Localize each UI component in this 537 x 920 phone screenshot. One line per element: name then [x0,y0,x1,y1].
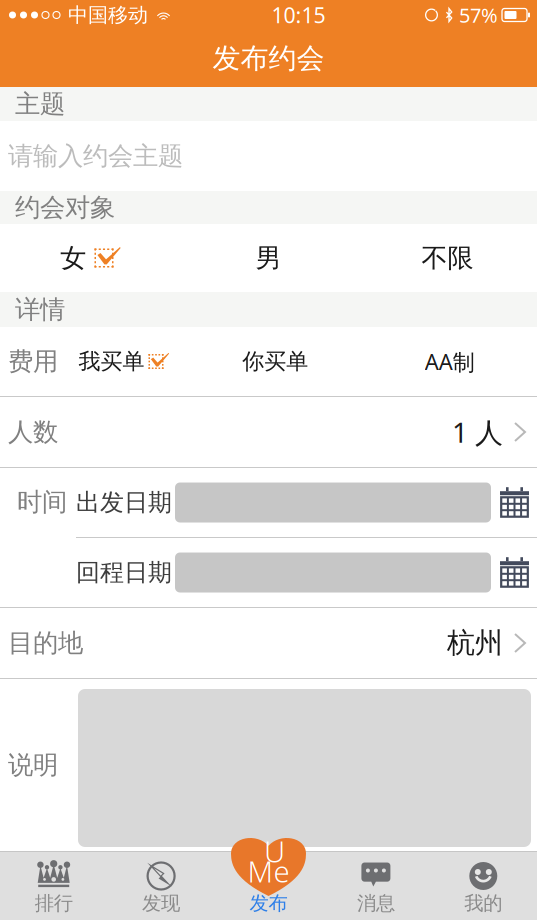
staticText: 主题 [15,88,65,120]
button[interactable]: 男 [179,224,358,292]
staticText: 消息 [357,891,395,915]
staticText: 发现 [142,891,180,915]
staticText: 杭州 [447,625,503,661]
button[interactable]: 发现 [107,851,215,920]
staticText: 发布约会 [212,41,324,76]
staticText: 发布 [249,891,287,915]
button[interactable]: 女 [0,224,179,292]
staticText: 详情 [15,293,65,325]
button[interactable]: AA制 [362,327,537,396]
staticText: 我的 [464,891,502,915]
staticText: 约会对象 [15,191,115,223]
button[interactable]: 我买单 [58,327,188,396]
button[interactable]: 我的 [430,851,537,920]
staticText: 回程日期 [76,557,172,588]
staticText: 排行 [35,891,73,915]
staticText: 说明 [8,749,58,781]
button[interactable]: 发布 [215,851,322,920]
button[interactable]: 目的地 [0,608,537,678]
button[interactable]: 你买单 [188,327,362,396]
staticText: 10:15 [271,0,325,30]
staticText: 目的地 [8,627,83,659]
staticText: U [264,831,285,871]
staticText: 中国移动 [68,2,148,28]
staticText: Me [247,851,289,891]
staticText: 女 [60,242,86,274]
button[interactable]: 不限 [358,224,537,292]
staticText: 我买单 [78,348,144,375]
staticText: 1 人 [452,413,503,451]
staticText: 你买单 [242,348,308,375]
staticText: 人数 [8,416,58,448]
staticText: 时间 [17,486,67,518]
staticText: 费用 [8,345,58,377]
staticText: 男 [255,242,281,274]
button[interactable]: 发布 [231,834,306,896]
staticText: 出发日期 [76,487,172,518]
staticText: 不限 [421,242,473,274]
button[interactable]: 消息 [322,851,430,920]
staticText: 57% [459,1,498,29]
button[interactable]: 排行 [0,851,107,920]
staticText: 请输入约会主题 [8,140,183,172]
button[interactable]: 人数 [0,397,537,467]
staticText: AA制 [425,346,475,376]
